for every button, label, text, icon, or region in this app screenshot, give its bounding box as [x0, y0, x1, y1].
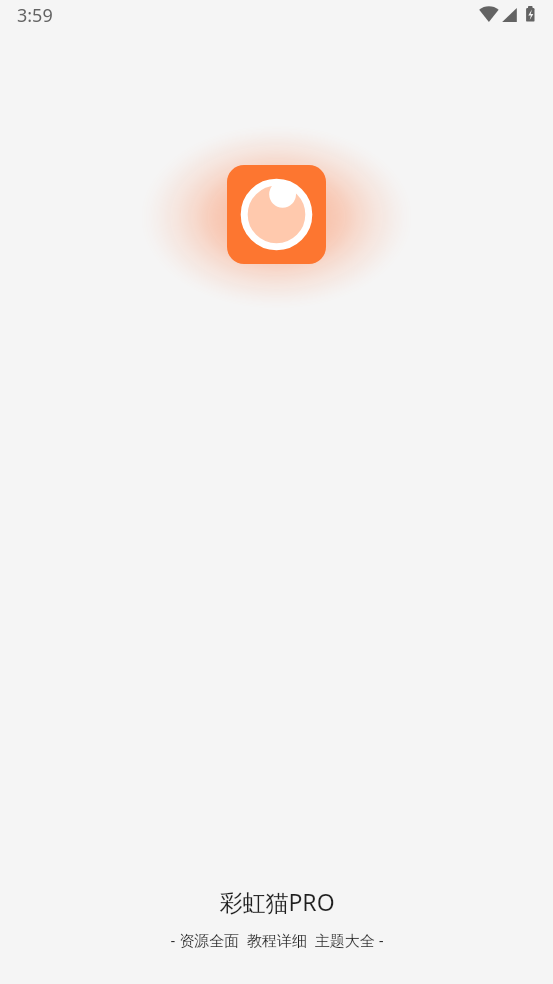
staticText: - 资源全面 教程详细 主题大全 -	[170, 930, 384, 950]
staticText: 3:59	[17, 3, 53, 28]
staticText: 彩虹猫PRO	[219, 886, 335, 917]
